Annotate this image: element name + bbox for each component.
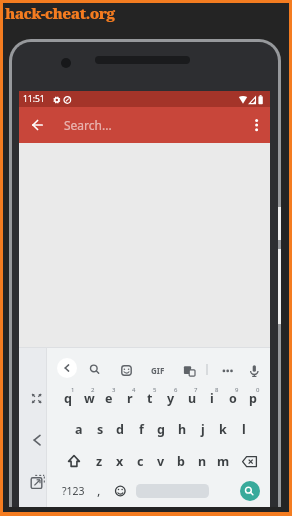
button[interactable]: f xyxy=(131,414,151,444)
button[interactable]: t xyxy=(140,383,160,413)
button[interactable] xyxy=(116,359,136,379)
button[interactable]: , xyxy=(91,476,107,504)
button[interactable] xyxy=(26,112,51,137)
button[interactable]: x xyxy=(110,446,130,476)
button[interactable]: i xyxy=(202,383,222,413)
staticText: r xyxy=(127,390,133,407)
staticText: 6 xyxy=(174,386,178,394)
staticText: g xyxy=(157,421,165,438)
button[interactable] xyxy=(240,481,260,501)
staticText: o xyxy=(229,390,237,407)
staticText: p xyxy=(249,390,257,407)
button[interactable]: b xyxy=(171,446,191,476)
button[interactable] xyxy=(26,388,47,409)
button[interactable]: Search... xyxy=(64,107,112,143)
button[interactable] xyxy=(26,430,47,451)
staticText: j xyxy=(201,421,205,438)
staticText: e xyxy=(105,390,113,407)
staticText: d xyxy=(116,421,124,438)
button[interactable]: j xyxy=(193,414,213,444)
button[interactable]: o xyxy=(223,383,243,413)
staticText: f xyxy=(139,421,144,438)
button[interactable]: . xyxy=(234,476,250,504)
button[interactable]: hack-cheat.org xyxy=(5,3,115,23)
staticText: , xyxy=(97,481,101,499)
staticText: v xyxy=(157,453,165,470)
staticText: 11:51 xyxy=(23,93,45,105)
staticText: 0 xyxy=(256,386,260,394)
button[interactable]: m xyxy=(213,446,233,476)
staticText: m xyxy=(217,453,230,470)
staticText: hack-cheat.org xyxy=(5,3,115,23)
button[interactable]: GIF xyxy=(145,360,171,380)
staticText: Search... xyxy=(64,117,112,133)
button[interactable]: a xyxy=(69,414,89,444)
button[interactable]: l xyxy=(234,414,254,444)
button[interactable]: g xyxy=(151,414,171,444)
button[interactable]: q xyxy=(58,383,78,413)
button[interactable]: ?123 xyxy=(56,477,90,505)
staticText: n xyxy=(198,453,207,470)
staticText: 4 xyxy=(132,386,136,394)
staticText: GIF xyxy=(151,365,165,376)
button[interactable] xyxy=(245,112,269,137)
staticText: c xyxy=(137,453,144,470)
staticText: a xyxy=(75,421,83,438)
button[interactable]: e xyxy=(99,383,119,413)
staticText: . xyxy=(240,481,244,499)
staticText: 7 xyxy=(194,386,198,394)
button[interactable] xyxy=(57,358,77,378)
staticText: u xyxy=(188,390,197,407)
button[interactable]: u xyxy=(182,383,202,413)
button[interactable]: n xyxy=(192,446,212,476)
button[interactable]: c xyxy=(130,446,150,476)
staticText: 1 xyxy=(71,386,75,394)
staticText: 3 xyxy=(112,386,116,394)
button[interactable]: h xyxy=(172,414,192,444)
button[interactable] xyxy=(64,447,84,475)
staticText: y xyxy=(167,390,175,407)
staticText: 2 xyxy=(91,386,95,394)
staticText: t xyxy=(147,390,153,407)
staticText: h xyxy=(178,421,187,438)
button[interactable]: r xyxy=(120,383,140,413)
button[interactable]: p xyxy=(243,383,263,413)
staticText: l xyxy=(242,421,246,438)
button[interactable] xyxy=(239,447,261,475)
staticText: 9 xyxy=(235,386,239,394)
button[interactable] xyxy=(179,359,199,379)
button[interactable] xyxy=(26,471,47,492)
staticText: s xyxy=(97,421,104,438)
staticText: q xyxy=(64,390,72,407)
staticText: x xyxy=(116,453,124,470)
button[interactable]: k xyxy=(213,414,233,444)
button[interactable] xyxy=(217,359,237,379)
staticText: i xyxy=(210,390,214,407)
button[interactable]: s xyxy=(90,414,110,444)
staticText: z xyxy=(96,453,103,470)
button[interactable] xyxy=(110,477,130,505)
button[interactable]: w xyxy=(79,383,99,413)
button[interactable] xyxy=(244,359,264,379)
staticText: k xyxy=(219,421,227,438)
button[interactable]: y xyxy=(161,383,181,413)
staticText: w xyxy=(84,390,95,407)
staticText: b xyxy=(177,453,185,470)
button[interactable]: d xyxy=(110,414,130,444)
staticText: ?123 xyxy=(62,484,85,498)
staticText: 5 xyxy=(153,386,157,394)
staticText: 8 xyxy=(215,386,219,394)
button[interactable] xyxy=(84,359,104,379)
button[interactable]: v xyxy=(151,446,171,476)
button[interactable]: z xyxy=(89,446,109,476)
